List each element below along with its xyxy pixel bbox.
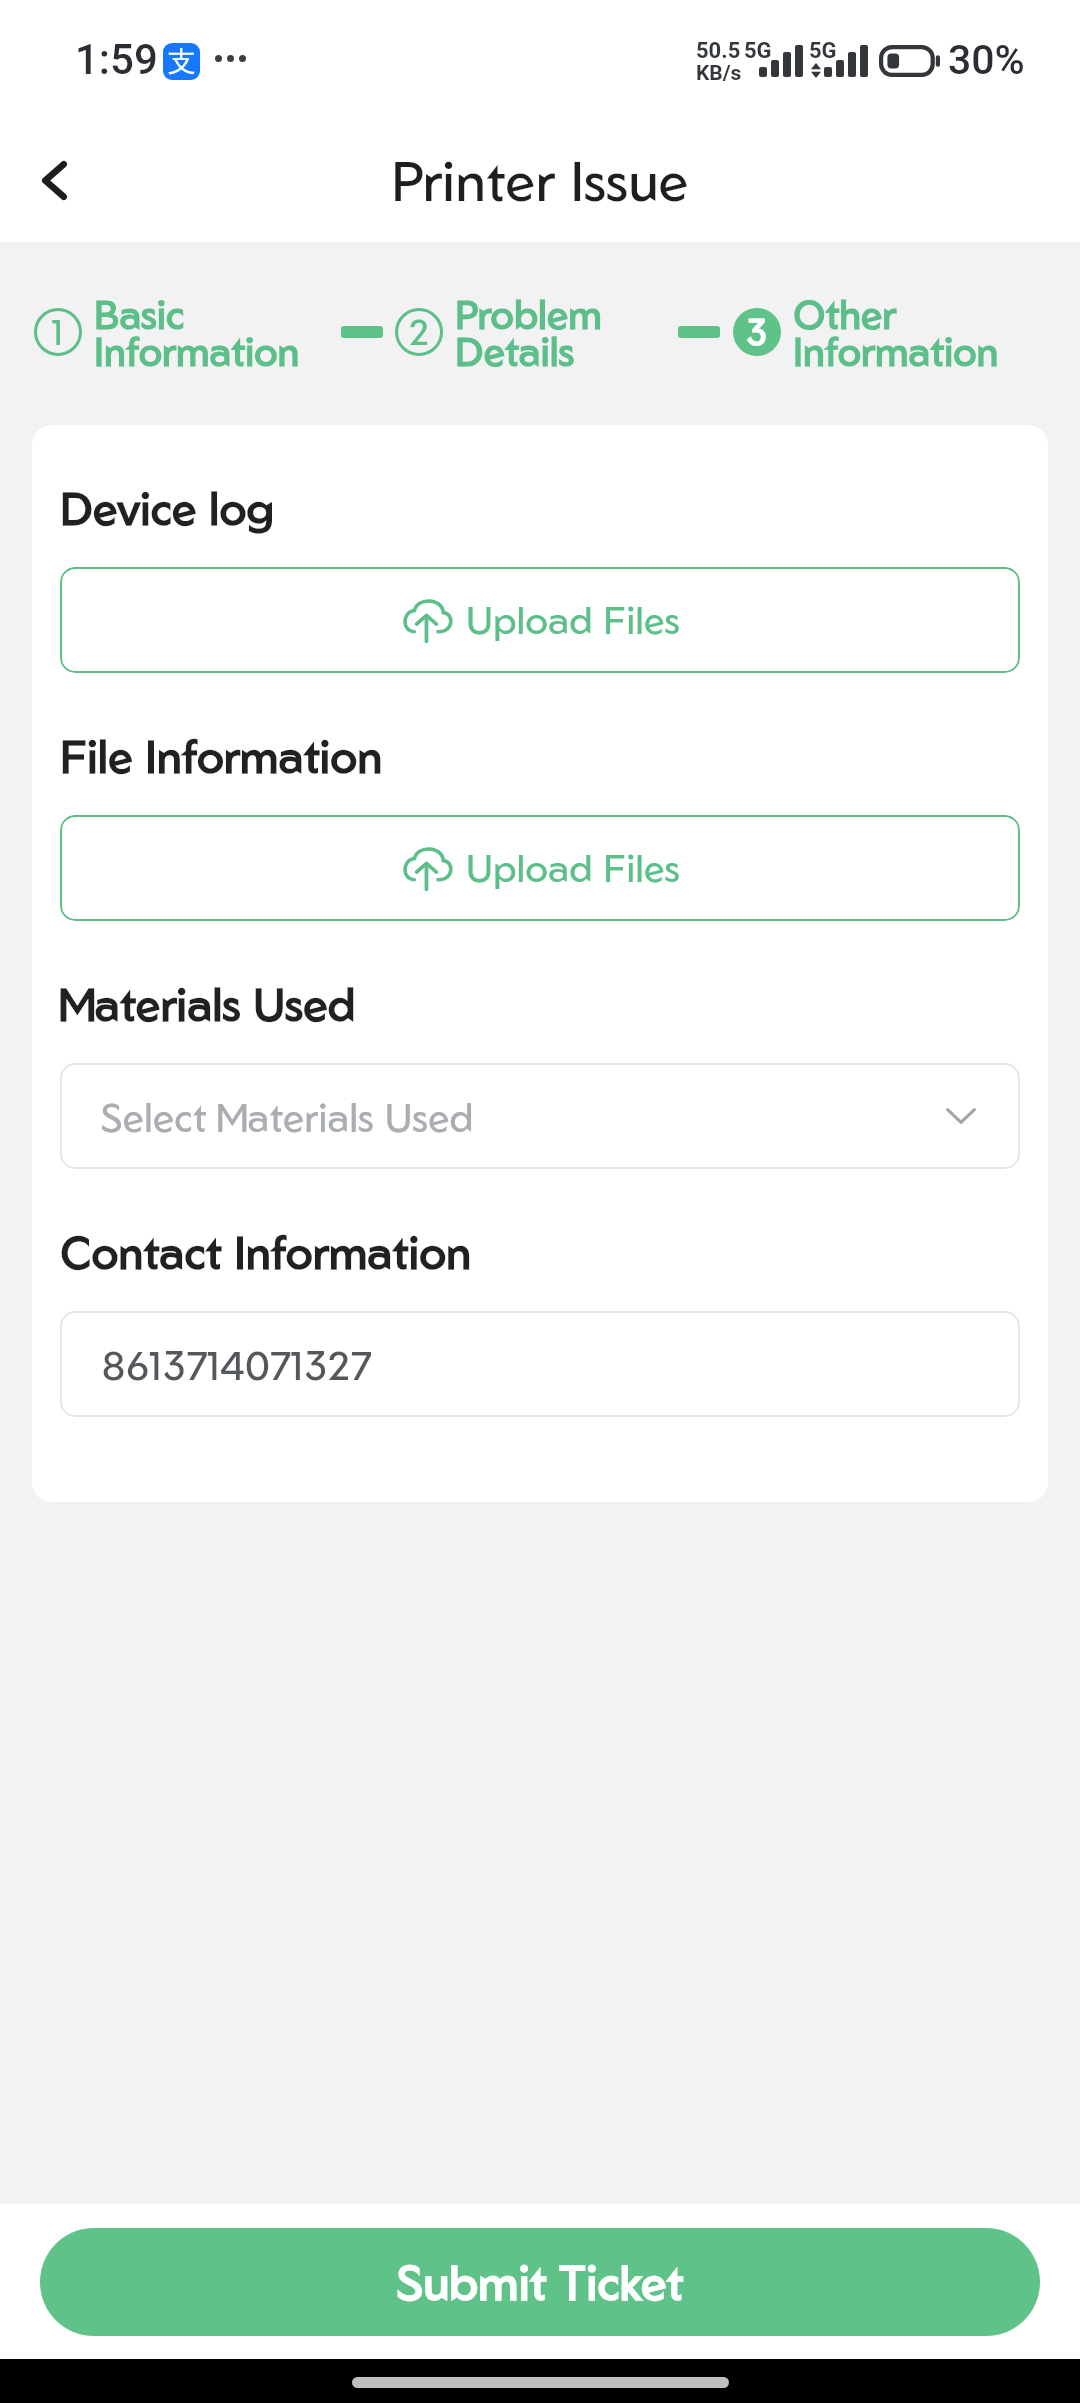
staticText: Upload Files: [466, 843, 680, 891]
staticText: Materials Used: [60, 975, 356, 1031]
staticText: 50.5: [696, 38, 741, 64]
staticText: 1: [52, 309, 64, 353]
staticText: 5G: [809, 38, 837, 64]
staticText: File Information: [60, 727, 383, 783]
staticText: Upload Files: [466, 595, 680, 643]
staticText: 支: [168, 44, 196, 79]
staticText: Basic Information: [94, 289, 300, 375]
staticText: Problem Details: [455, 289, 602, 375]
button[interactable]: 8613714071327: [60, 1311, 1020, 1417]
staticText: 5G: [744, 38, 772, 64]
button[interactable]: Back: [14, 140, 94, 220]
staticText: 30%: [948, 36, 1025, 84]
staticText: 1:59: [75, 35, 158, 84]
staticText: 2: [409, 309, 430, 353]
button[interactable]: Submit Ticket: [40, 2228, 1040, 2336]
staticText: KB/s: [696, 61, 742, 86]
staticText: Printer Issue: [391, 145, 689, 214]
staticText: Submit Ticket: [397, 2252, 684, 2311]
staticText: Select Materials Used: [101, 1092, 474, 1141]
staticText: Device log: [60, 479, 275, 535]
staticText: Other Information: [793, 289, 999, 375]
button[interactable]: 1: [34, 289, 300, 375]
button[interactable]: Select Materials Used: [60, 1063, 1020, 1169]
staticText: 8613714071327: [101, 1340, 371, 1389]
button[interactable]: Upload Files: [60, 815, 1020, 921]
button[interactable]: 3: [733, 289, 999, 375]
staticText: 3: [746, 309, 768, 353]
button[interactable]: 2: [395, 289, 602, 375]
staticText: Contact Information: [60, 1223, 472, 1279]
button[interactable]: Upload Files: [60, 567, 1020, 673]
